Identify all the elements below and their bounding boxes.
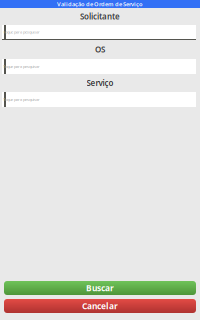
button[interactable]: Buscar [4, 281, 196, 295]
staticText: Buscar [86, 282, 114, 294]
staticText: OS [95, 44, 105, 55]
button[interactable]: Toque para pesquisar [0, 92, 196, 107]
button[interactable]: Cancelar [4, 299, 196, 313]
button[interactable]: Toque para pesquisar [0, 59, 196, 74]
staticText: Toque para pesquisar [3, 97, 40, 102]
staticText: Validação de Ordem de Serviço [57, 0, 143, 8]
staticText: Solicitante [80, 11, 120, 22]
staticText: Serviço [86, 78, 113, 88]
button[interactable]: Toque para pesquisar [0, 25, 196, 40]
staticText: Toque para pesquisar [3, 64, 40, 69]
staticText: Cancelar [82, 300, 118, 312]
staticText: Toque para pesquisar [3, 29, 40, 35]
